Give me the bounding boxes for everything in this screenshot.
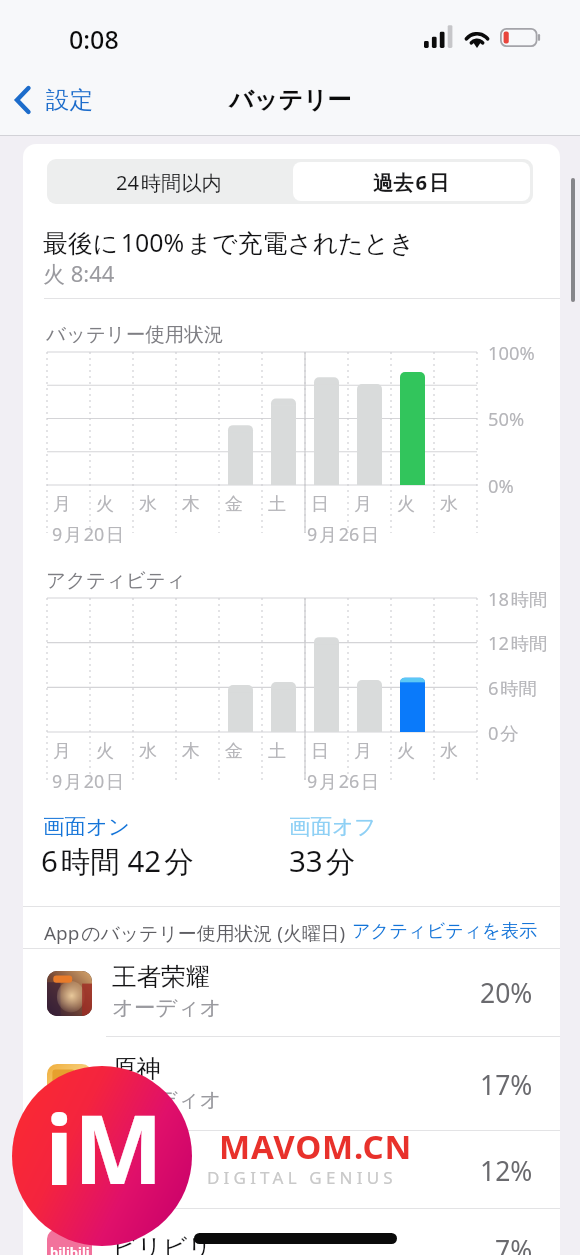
staticText: 火 (96, 740, 114, 763)
button[interactable]: 原神 (0, 1036, 580, 1130)
staticText: 9 月 20 日 (52, 769, 124, 793)
staticText: 火 (397, 740, 415, 763)
staticText: アクティビティ (46, 568, 186, 593)
staticText: オーディオ (112, 1086, 222, 1113)
staticText: 月 (53, 493, 71, 516)
staticText: 33 分 (289, 840, 356, 880)
staticText: iM (45, 1082, 163, 1211)
staticText: 12 時間 (488, 630, 548, 655)
staticText: 24 時間以内 (116, 168, 222, 196)
staticText: 原神 (112, 1053, 161, 1084)
staticText: オーディオ (112, 994, 222, 1021)
staticText: DIGITAL GENIUS (207, 1166, 397, 1189)
staticText: 9 月 26 日 (307, 522, 379, 546)
button[interactable]: 王者荣耀 (0, 945, 580, 1036)
staticText: 月 (53, 740, 71, 763)
other: Back (15, 86, 30, 114)
staticText: 木 (182, 493, 200, 516)
button[interactable]: アクティビティを表示 (347, 910, 543, 946)
button[interactable]: 24 時間以内 (47, 159, 290, 204)
staticText: 9 月 26 日 (307, 769, 379, 793)
staticText: 7% (495, 1232, 533, 1255)
staticText: 18 時間 (488, 586, 548, 611)
staticText: 50% (488, 406, 525, 431)
staticText: 土 (268, 740, 286, 763)
staticText: 0:08 (69, 22, 119, 56)
staticText: 土 (268, 493, 286, 516)
staticText: 木 (182, 740, 200, 763)
staticText: 9 月 20 日 (52, 522, 124, 546)
button[interactable]: 過去 6 日 (290, 159, 533, 204)
staticText: 火 (96, 493, 114, 516)
button[interactable]: 12% (0, 1130, 580, 1208)
staticText: 0 分 (488, 720, 519, 745)
staticText: 王者荣耀 (112, 961, 210, 992)
staticText: 最後に 100% まで充電されたとき (43, 225, 415, 259)
staticText: バッテリー (229, 85, 352, 115)
staticText: 日 (311, 493, 329, 516)
staticText: 火 (397, 493, 415, 516)
staticText: 日 (311, 740, 329, 763)
button[interactable]: Back (8, 74, 100, 126)
staticText: 水 (440, 740, 458, 763)
staticText: 火 8:44 (43, 258, 115, 288)
staticText: 金 (225, 740, 243, 763)
staticText: 画面オン (43, 813, 131, 840)
staticText: 6 時間 42 分 (41, 840, 194, 880)
staticText: 水 (139, 740, 157, 763)
staticText: 水 (440, 493, 458, 516)
staticText: 金 (225, 493, 243, 516)
staticText: 17% (480, 1067, 533, 1103)
staticText: bilibili (50, 1243, 90, 1255)
staticText: 画面オフ (289, 813, 377, 840)
staticText: 12% (480, 1153, 533, 1189)
staticText: 月 (354, 493, 372, 516)
staticText: 20% (480, 975, 533, 1011)
staticText: App のバッテリー使用状況 (火曜日) (44, 920, 346, 946)
staticText: バッテリー使用状況 (46, 322, 224, 347)
staticText: ビリビリ (112, 1232, 213, 1255)
staticText: アクティビティを表示 (352, 919, 538, 942)
staticText: 水 (139, 493, 157, 516)
staticText: 月 (354, 740, 372, 763)
staticText: 過去 6 日 (373, 168, 450, 196)
staticText: MAVOM.CN (219, 1124, 413, 1169)
staticText: 100% (488, 340, 535, 365)
staticText: 0% (488, 473, 514, 498)
staticText: 設定 (46, 85, 93, 115)
staticText: 6 時間 (488, 675, 537, 700)
button[interactable]: bilibili (0, 1208, 580, 1255)
